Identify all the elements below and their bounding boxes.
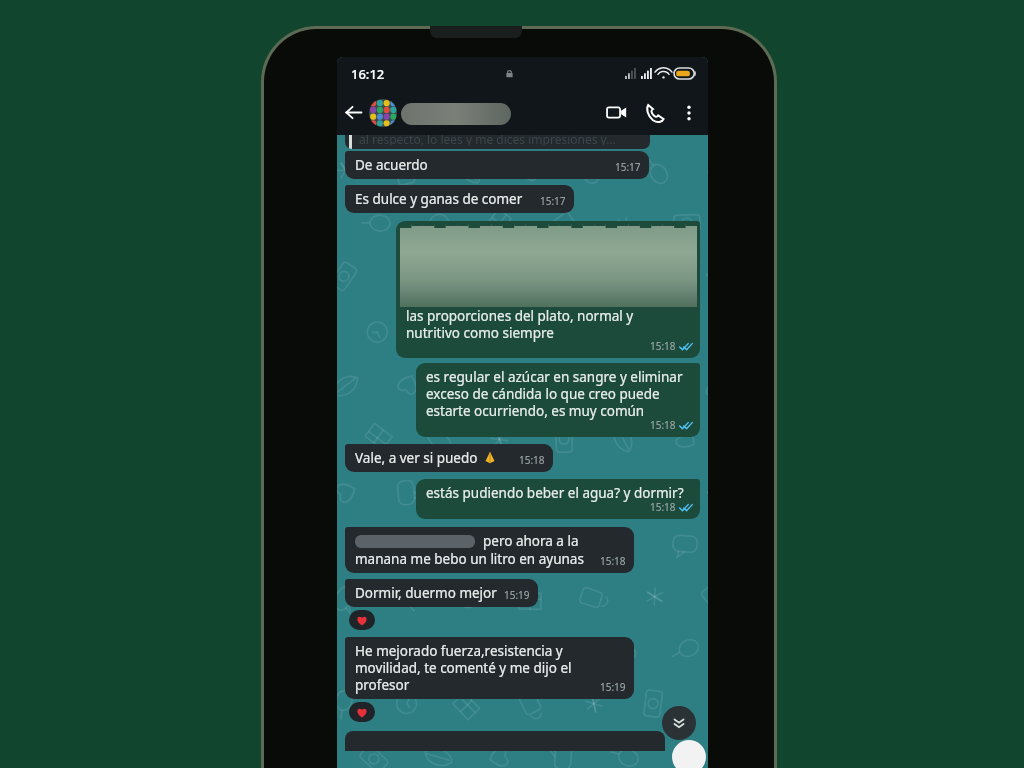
button[interactable]: Heart reaction [349,610,375,630]
button[interactable]: Call [636,90,674,135]
staticText: las proporciones del plato, normal y nut… [406,307,634,342]
staticText: 15:18 [519,453,545,467]
staticText: 16:12 [351,65,385,83]
staticText: He mejorado fuerza,resistencia y movilid… [355,642,572,694]
staticText: Es dulce y ganas de comer [355,190,523,208]
staticText: 15:17 [615,160,641,174]
staticText: pero ahora a la [483,532,579,550]
button[interactable] [369,90,596,135]
staticText: 15:19 [504,588,530,602]
staticText: Vale, a ver si puedo [355,449,478,467]
staticText: De acuerdo [355,156,428,174]
button[interactable]: De acuerdo [345,151,649,179]
button[interactable]: Dormir, duermo mejor [345,579,538,607]
button[interactable]: estás pudiendo beber el agua? y dormir? [416,479,700,519]
staticText: Dormir, duermo mejor [355,584,497,602]
staticText: 15:18 [650,418,676,432]
button[interactable]: Back [337,90,369,135]
button[interactable]: pero ahora a la [345,527,634,573]
staticText: estás pudiendo beber el agua? y dormir? [426,484,684,502]
button[interactable]: al respecto, lo lees y me dices impresio… [345,135,650,149]
button[interactable]: Scroll to bottom [662,706,696,740]
button[interactable]: Vale, a ver si puedo [345,444,553,472]
staticText: 15:17 [540,194,566,208]
button[interactable]: Heart reaction [349,702,375,722]
button[interactable]: Video call [596,90,636,135]
staticText: al respecto, lo lees y me dices impresio… [359,135,616,145]
staticText: 15:18 [600,554,626,568]
staticText: 15:19 [600,680,626,694]
staticText: 15:18 [650,339,676,353]
staticText: manana me bebo un litro en ayunas [355,550,584,568]
staticText: es regular el azúcar en sangre y elimina… [426,368,683,420]
button[interactable]: es regular el azúcar en sangre y elimina… [416,363,700,437]
button[interactable] [345,731,665,751]
button[interactable]: Es dulce y ganas de comer [345,185,574,213]
button[interactable]: las proporciones del plato, normal y nut… [396,221,700,358]
staticText: 15:18 [650,500,676,514]
button[interactable]: He mejorado fuerza,resistencia y movilid… [345,637,634,699]
button[interactable]: More options [674,90,704,135]
